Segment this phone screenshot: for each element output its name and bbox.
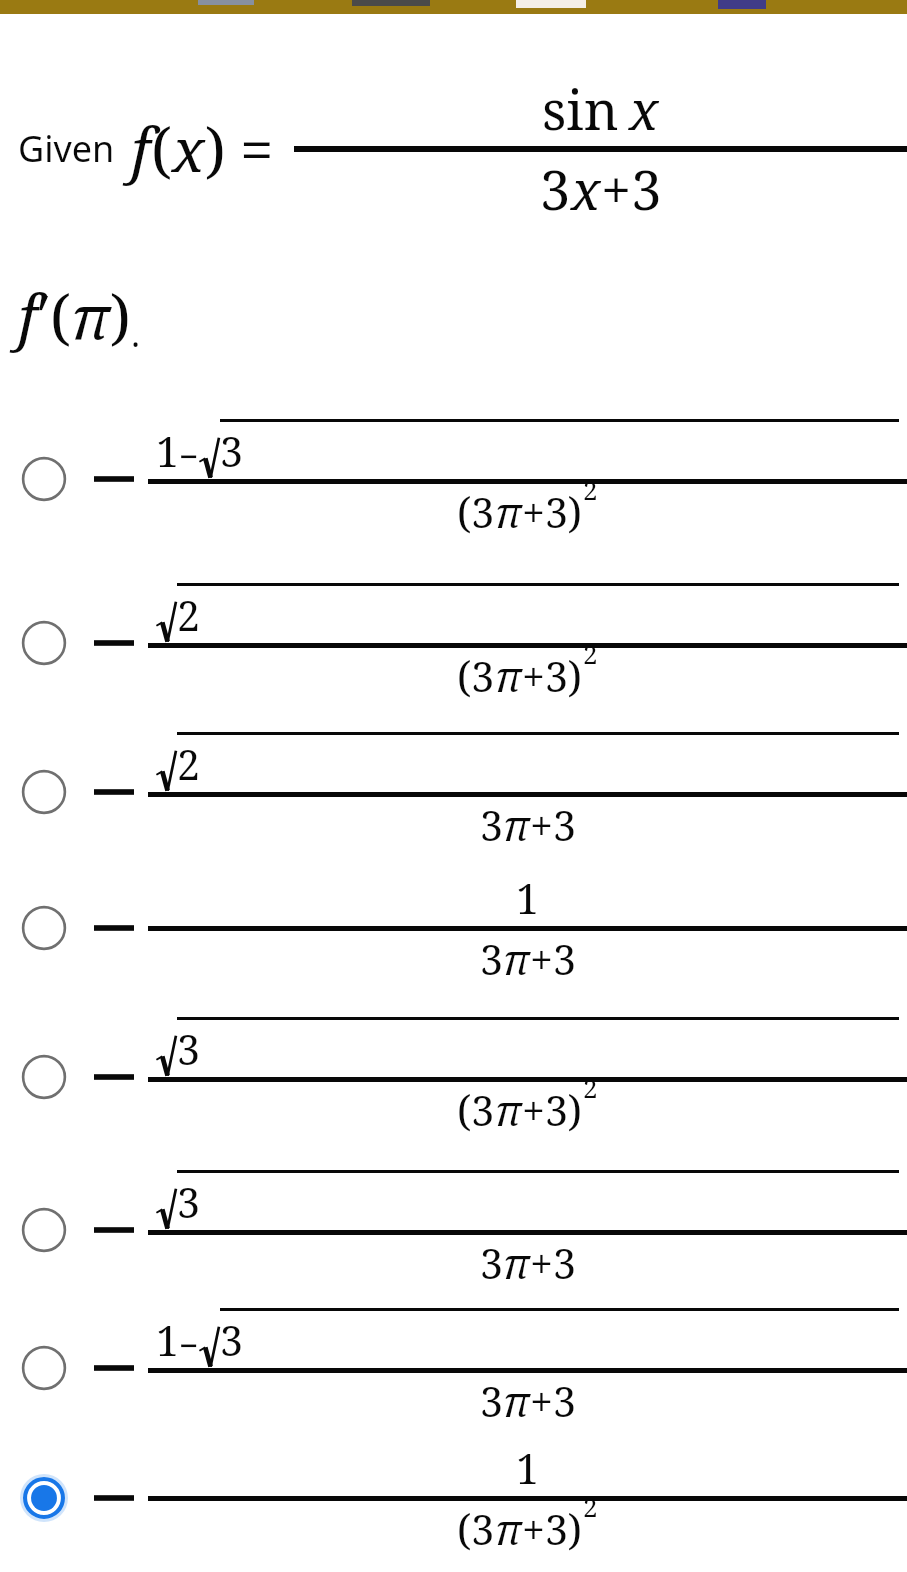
staticText: − [179,1322,199,1368]
staticText: ) [205,108,226,190]
staticText: 3 [540,152,571,226]
staticText: +3) [522,484,583,540]
staticText: 3 [480,931,503,987]
staticText: (3 [457,1501,495,1557]
staticText: (3 [457,1082,495,1138]
staticText: +3 [530,797,576,853]
staticText: x [629,72,659,146]
staticText: sin [542,72,619,146]
staticText: . [131,311,141,357]
button[interactable]: Answer option [0,1157,907,1303]
staticText: ( [151,108,172,190]
staticText: 2 [177,587,200,643]
staticText: 1 [156,1312,179,1368]
staticText: +3 [530,1235,576,1291]
staticText: +3) [522,1082,583,1138]
button[interactable]: Answer option [0,1303,907,1433]
staticText: 2 [583,1070,598,1105]
staticText: 2 [583,472,598,507]
staticText: +3 [530,1373,576,1429]
staticText: f [131,108,151,190]
staticText: ′ [38,275,50,357]
other: Answer option [20,1206,68,1254]
staticText: ( [50,275,71,357]
staticText: π [503,1373,530,1429]
other: Selected answer [20,1474,68,1522]
staticText: 2 [177,736,200,792]
button[interactable]: Answer option [0,997,907,1157]
button[interactable]: Answer option [0,725,907,859]
staticText: 1 [516,1440,539,1496]
staticText: − [179,433,199,479]
staticText: ) [110,275,131,357]
staticText: π [495,648,522,704]
staticText: 3 [220,423,243,479]
staticText: 3 [480,1373,503,1429]
staticText: = [240,108,274,190]
staticText: (3 [457,484,495,540]
other: Answer option [20,619,68,667]
staticText: (3 [457,648,495,704]
staticText: +3 [601,152,662,226]
staticText: 2 [583,636,598,671]
staticText: 1 [156,423,179,479]
staticText: π [503,931,530,987]
other: Answer option [20,904,68,952]
staticText: π [495,1501,522,1557]
button[interactable]: Answer option [0,859,907,997]
staticText: x [571,152,601,226]
staticText: 3 [480,797,503,853]
button[interactable]: Answer option [0,561,907,725]
other: Answer option [20,768,68,816]
staticText: π [71,275,110,357]
staticText: π [503,1235,530,1291]
other: Answer option [20,1344,68,1392]
staticText: 3 [480,1235,503,1291]
staticText: π [503,797,530,853]
staticText: 3 [220,1312,243,1368]
staticText: Given [18,124,115,173]
staticText: +3 [530,931,576,987]
button[interactable]: Answer option [0,397,907,561]
staticText: f [18,275,38,357]
staticText: 2 [583,1489,598,1524]
other: Answer option [20,1053,68,1101]
staticText: 1 [516,870,539,926]
staticText: π [495,1082,522,1138]
staticText: +3) [522,648,583,704]
staticText: 3 [177,1174,200,1230]
staticText: 3 [177,1021,200,1077]
staticText: +3) [522,1501,583,1557]
other: Answer option [20,455,68,503]
staticText: π [495,484,522,540]
staticText: x [172,108,205,190]
button[interactable]: Selected answer [0,1433,907,1563]
